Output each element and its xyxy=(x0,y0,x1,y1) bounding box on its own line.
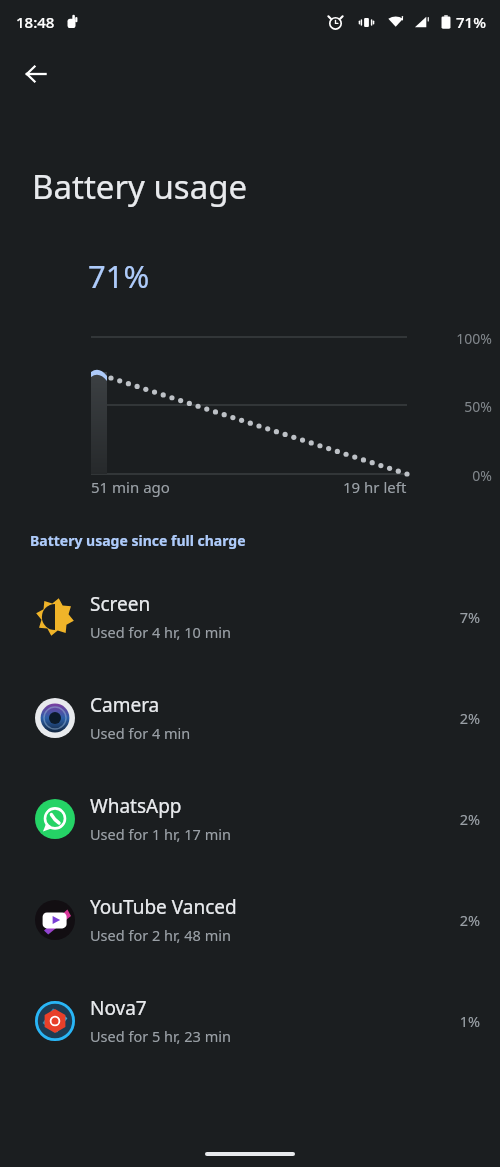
staticText: 18:48 xyxy=(16,12,55,32)
staticText: 51 min ago xyxy=(91,477,170,497)
staticText: 50% xyxy=(464,397,492,416)
button[interactable]: YouTube Vanced xyxy=(0,869,500,970)
staticText: Used for 4 hr, 10 min xyxy=(90,622,231,642)
staticText: 2% xyxy=(459,708,480,728)
staticText: 0% xyxy=(472,466,492,485)
staticText: 71% xyxy=(88,255,150,297)
staticText: Nova7 xyxy=(90,995,147,1021)
button[interactable]: Back xyxy=(12,50,60,98)
staticText: WhatsApp xyxy=(90,793,182,819)
staticText: Battery usage xyxy=(32,164,248,209)
staticText: Screen xyxy=(90,591,151,617)
staticText: Camera xyxy=(90,692,160,718)
staticText: 100% xyxy=(456,329,492,348)
staticText: YouTube Vanced xyxy=(90,894,237,920)
staticText: 1% xyxy=(459,1011,480,1031)
staticText: 71% xyxy=(456,12,486,32)
staticText: 7% xyxy=(459,607,480,627)
staticText: Used for 1 hr, 17 min xyxy=(90,824,231,844)
button[interactable]: Camera xyxy=(0,667,500,768)
staticText: Used for 5 hr, 23 min xyxy=(90,1026,231,1046)
staticText: Used for 4 min xyxy=(90,723,191,743)
button[interactable]: Nova7 xyxy=(0,970,500,1071)
button[interactable]: Screen xyxy=(0,566,500,667)
button[interactable]: WhatsApp xyxy=(0,768,500,869)
staticText: Used for 2 hr, 48 min xyxy=(90,925,231,945)
staticText: 2% xyxy=(459,910,480,930)
staticText: 19 hr left xyxy=(343,477,407,497)
staticText: 2% xyxy=(459,809,480,829)
staticText: Battery usage since full charge xyxy=(30,531,246,550)
